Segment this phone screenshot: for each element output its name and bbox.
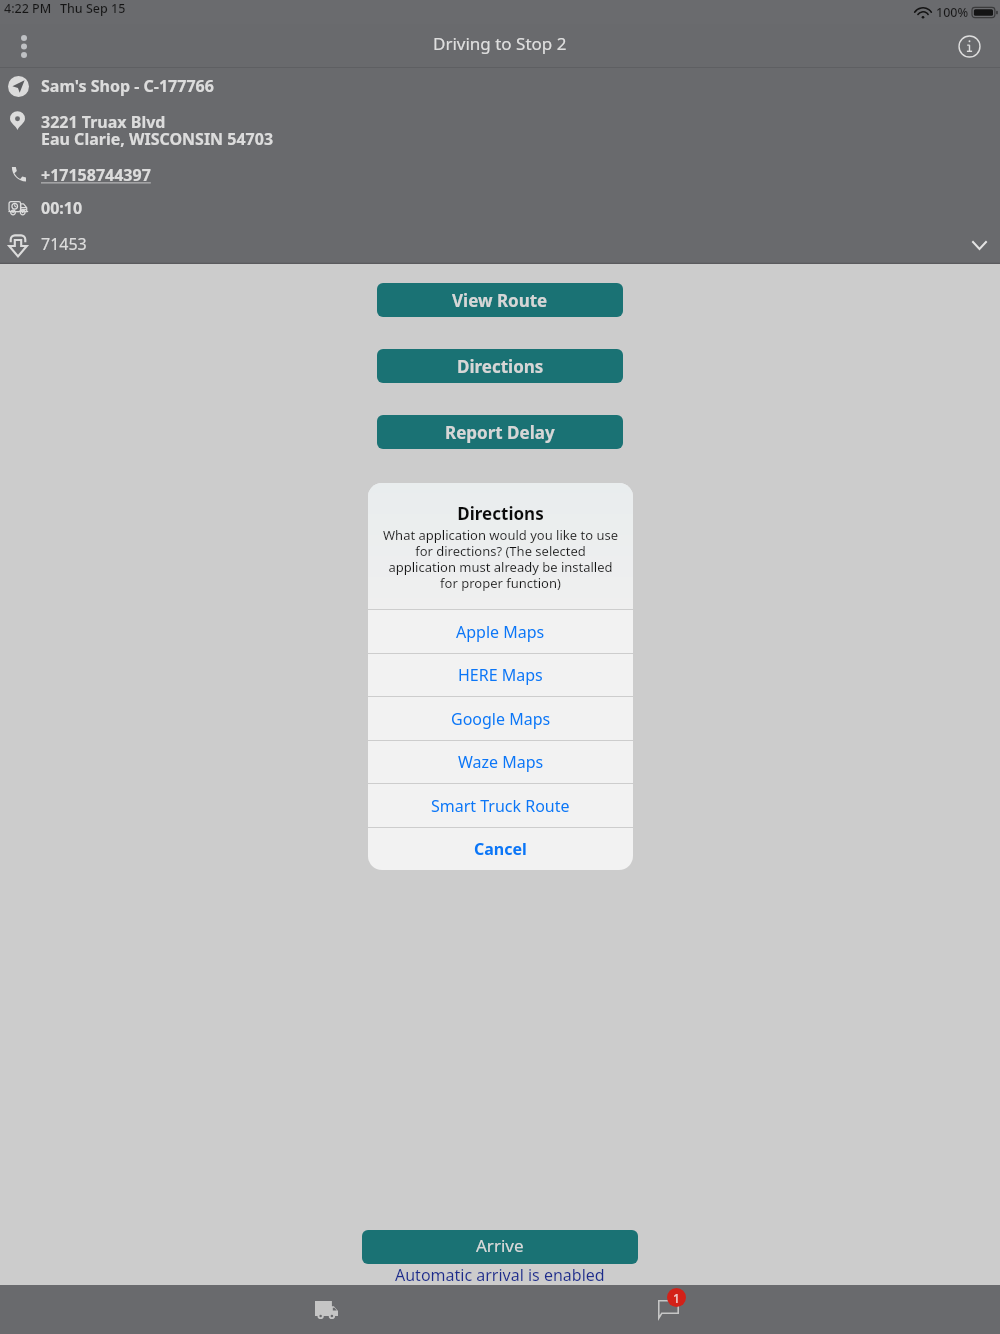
staticText: Smart Truck Route — [431, 795, 570, 817]
staticText: Driving to Stop 2 — [433, 32, 567, 55]
button[interactable]: Smart Truck Route — [368, 784, 633, 827]
staticText: 4:22 PM — [4, 0, 52, 17]
staticText: 3221 Truax Blvd — [41, 111, 166, 133]
button[interactable]: +17158744397 — [41, 164, 151, 186]
button[interactable]: Directions — [377, 349, 623, 383]
staticText: Google Maps — [451, 708, 551, 730]
staticText: HERE Maps — [458, 664, 543, 686]
button[interactable]: Messages — [646, 1285, 698, 1329]
staticText: What application would you like to use f… — [380, 526, 621, 591]
staticText: Eau Clarie, WISCONSIN 54703 — [41, 128, 274, 150]
button[interactable]: Google Maps — [368, 697, 633, 740]
button[interactable]: HERE Maps — [368, 654, 633, 696]
staticText: Directions — [457, 355, 544, 378]
staticText: Thu Sep 15 — [60, 0, 126, 17]
staticText: View Route — [452, 289, 548, 312]
staticText: Sam's Shop - C-177766 — [41, 75, 214, 97]
staticText: Arrive — [476, 1234, 524, 1257]
staticText: +17158744397 — [41, 164, 151, 186]
button[interactable]: Automatic arrival is enabled — [395, 1264, 605, 1285]
button[interactable]: Arrive — [362, 1230, 638, 1264]
staticText: Report Delay — [445, 421, 555, 444]
staticText: 1 — [673, 1290, 680, 1306]
button[interactable]: Report Delay — [377, 415, 623, 449]
staticText: Cancel — [474, 838, 527, 860]
staticText: Waze Maps — [458, 751, 544, 773]
button[interactable]: Loads — [302, 1293, 350, 1326]
staticText: Directions — [457, 502, 544, 525]
button[interactable]: Expand details — [958, 224, 1000, 266]
button[interactable]: Waze Maps — [368, 741, 633, 783]
button[interactable]: Cancel — [368, 828, 633, 870]
button[interactable]: More options — [0, 24, 48, 68]
staticText: 71453 — [41, 233, 87, 255]
button[interactable]: Apple Maps — [368, 610, 633, 653]
staticText: 100% — [936, 4, 969, 21]
button[interactable]: View Route — [377, 283, 623, 317]
staticText: Apple Maps — [456, 621, 545, 643]
staticText: 00:10 — [41, 197, 83, 219]
button[interactable]: Info — [947, 24, 991, 68]
